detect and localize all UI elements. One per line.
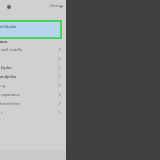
staticText: bhevcherleo [0, 101, 55, 106]
button[interactable]: bhevcherleo [0, 99, 66, 108]
staticText: Filters [50, 4, 59, 8]
staticText: c hydro [0, 65, 55, 70]
staticText: tions [0, 39, 8, 44]
staticText: c separation [0, 92, 55, 97]
button[interactable]: c r [0, 108, 66, 117]
staticText: c r [0, 110, 55, 115]
button[interactable]: c sg [0, 81, 66, 90]
button[interactable]: c [0, 54, 66, 63]
staticText: oid Studio [0, 24, 17, 29]
staticText: x-well-cutoffs [0, 47, 55, 52]
button[interactable]: c separation [0, 90, 66, 99]
button[interactable]: Account [7, 5, 11, 9]
staticText: i andjelka [0, 74, 55, 79]
button[interactable]: oid Studio [0, 20, 62, 39]
button[interactable]: c hydro [0, 63, 66, 72]
button[interactable]: Filters [50, 4, 63, 8]
button[interactable]: x-well-cutoffs [0, 45, 66, 54]
staticText: c sg [0, 83, 55, 88]
button[interactable]: i andjelka [0, 72, 66, 81]
